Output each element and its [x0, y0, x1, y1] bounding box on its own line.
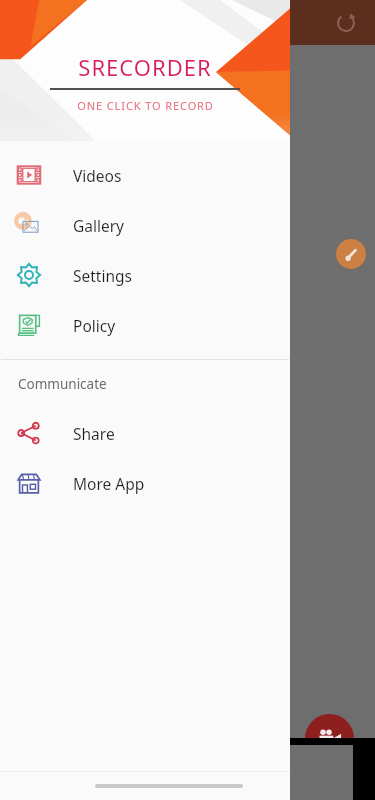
button[interactable]: Record [305, 714, 354, 763]
button[interactable]: Policy [0, 300, 290, 350]
staticText: SRECORDER [78, 52, 212, 82]
staticText: Policy [73, 315, 116, 336]
staticText: Videos [73, 165, 122, 186]
button[interactable]: Gallery [0, 200, 290, 250]
button[interactable]: Settings [0, 250, 290, 300]
staticText: Settings [73, 265, 132, 286]
button[interactable]: More App [0, 458, 290, 508]
button[interactable]: Videos [0, 150, 290, 200]
staticText: ONE CLICK TO RECORD [77, 98, 214, 113]
staticText: Gallery [73, 215, 125, 236]
staticText: Share [73, 423, 115, 444]
staticText: Communicate [18, 375, 107, 393]
button[interactable]: Share [0, 408, 290, 458]
staticText: More App [73, 473, 145, 494]
button[interactable]: Refresh [329, 6, 363, 40]
button[interactable]: Brush [336, 239, 366, 269]
